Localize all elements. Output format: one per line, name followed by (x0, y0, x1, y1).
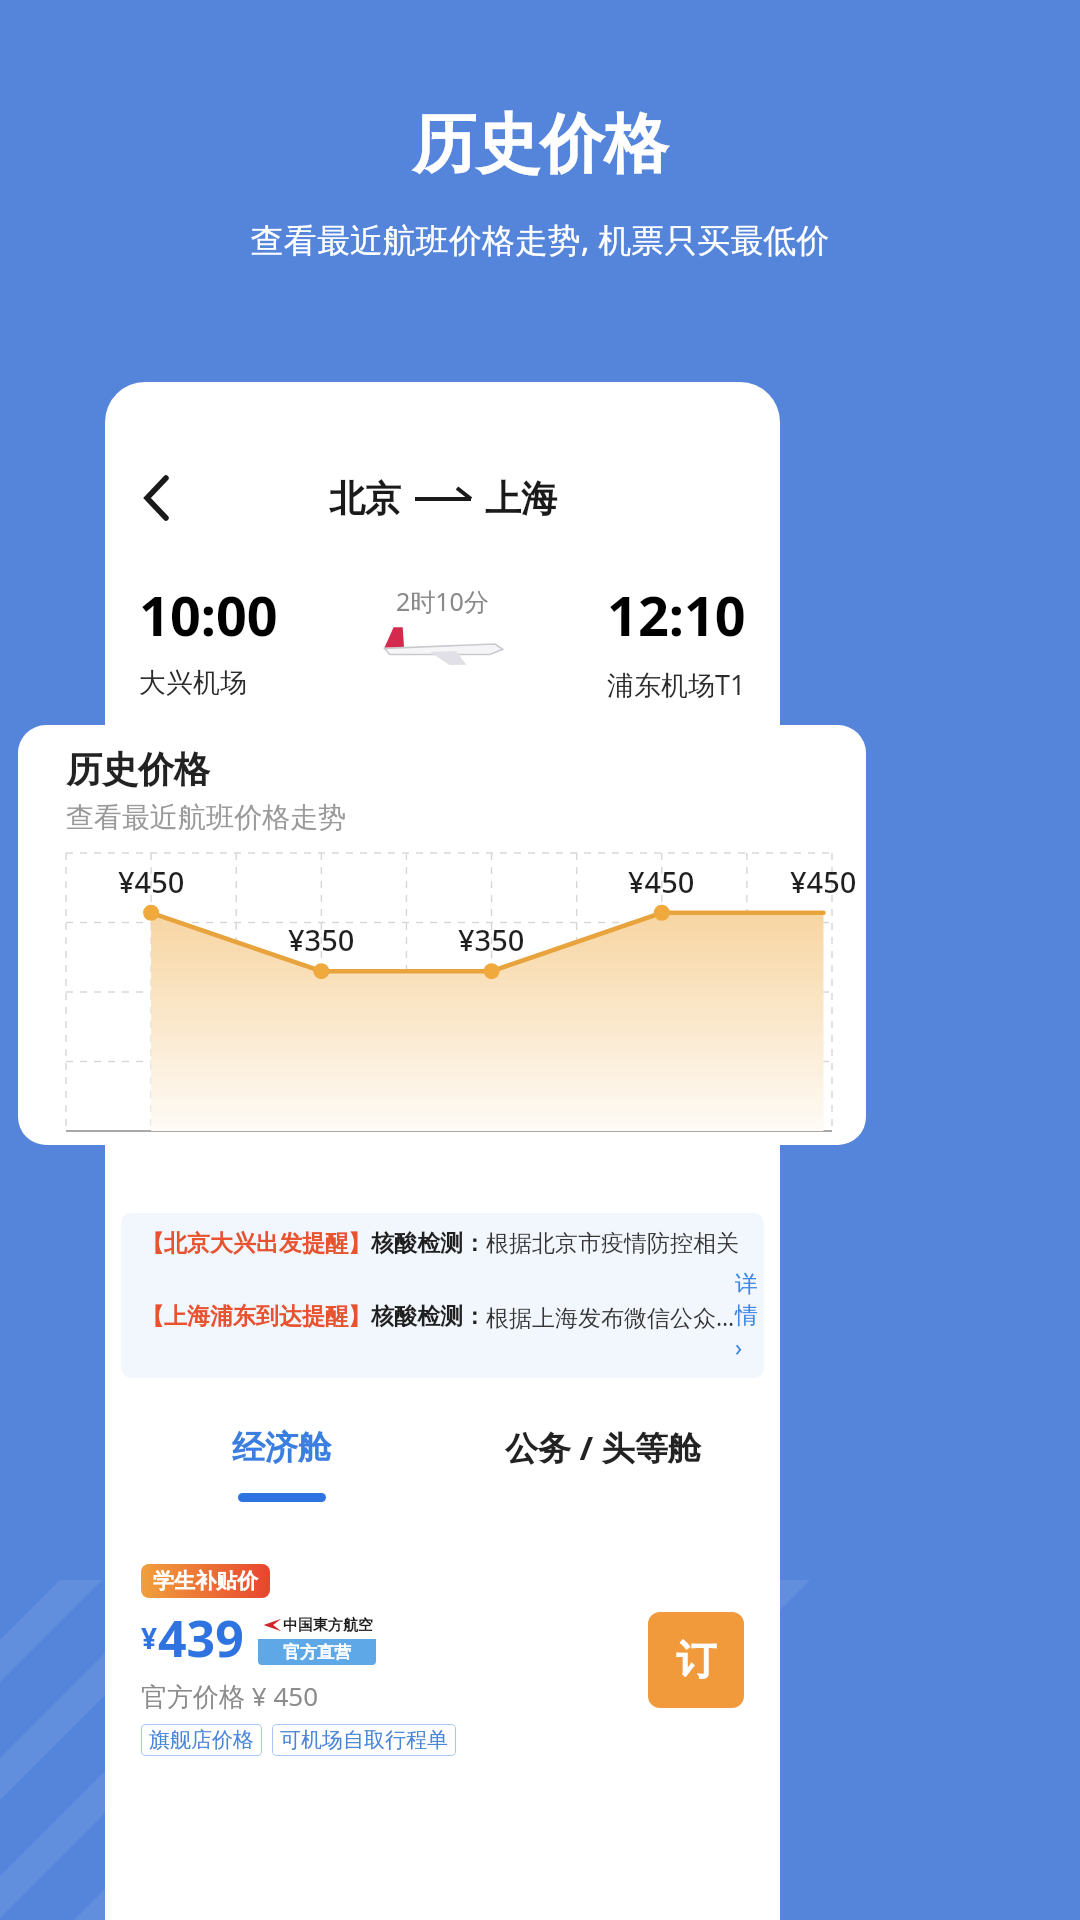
staticText: 官方直营 (283, 1642, 351, 1663)
staticText: 官方价格 ¥ 450 (141, 1678, 319, 1714)
staticText: 439 (158, 1604, 244, 1672)
staticText: 可机场自取行程单 (280, 1727, 448, 1753)
staticText: ¥350 (288, 920, 355, 959)
staticText: 查看最近航班价格走势, 机票只买最低价 (0, 217, 1080, 262)
staticText: 查看最近航班价格走势 (66, 800, 346, 835)
staticText: ¥450 (628, 862, 695, 901)
staticText: 中国東方航空 (283, 1616, 373, 1635)
staticText: 根据上海发布微信公众… (486, 1301, 735, 1332)
staticText: 2时10分 (396, 584, 489, 618)
button[interactable]: 公务 / 头等舱 (442, 1404, 764, 1524)
staticText: 上海 (485, 476, 557, 521)
staticText: ¥350 (458, 920, 525, 959)
button[interactable]: 经济舱 (121, 1404, 442, 1524)
button[interactable]: Back (125, 466, 189, 530)
staticText: 根据北京市疫情防控相关要求，自6… (486, 1229, 744, 1258)
staticText: ¥ (141, 1619, 158, 1657)
staticText: 大兴机场 (139, 666, 247, 700)
staticText: 历史价格 (0, 104, 1080, 185)
staticText: 历史价格 (66, 747, 210, 792)
button[interactable]: 【北京大兴出发提醒】 (121, 1213, 764, 1378)
staticText: 10:00 (139, 578, 278, 652)
staticText: 浦东机场T1 (607, 666, 746, 703)
staticText: 12:10 (607, 578, 746, 652)
staticText: 北京 (329, 476, 401, 521)
staticText: ¥450 (790, 862, 857, 901)
staticText: 空客 321-200(中) (153, 739, 351, 775)
staticText: 旗舰店价格 (149, 1727, 254, 1753)
staticText: 订 (676, 1635, 716, 1685)
staticText: 核酸检测： (371, 1302, 486, 1331)
staticText: 详情 › (735, 1270, 744, 1362)
staticText: 经济舱 (232, 1427, 331, 1469)
staticText: ¥450 (118, 862, 185, 901)
staticText: 核酸检测： (371, 1229, 486, 1258)
button[interactable]: 学生补贴价 (121, 1550, 764, 1770)
staticText: 【上海浦东到达提醒】 (141, 1302, 371, 1331)
button[interactable]: 空客 321-200(中) (105, 725, 780, 789)
staticText: 公务 / 头等舱 (505, 1425, 701, 1470)
staticText: 学生补贴价 (153, 1568, 258, 1594)
button[interactable]: 订 (648, 1612, 744, 1708)
staticText: 【北京大兴出发提醒】 (141, 1229, 371, 1258)
